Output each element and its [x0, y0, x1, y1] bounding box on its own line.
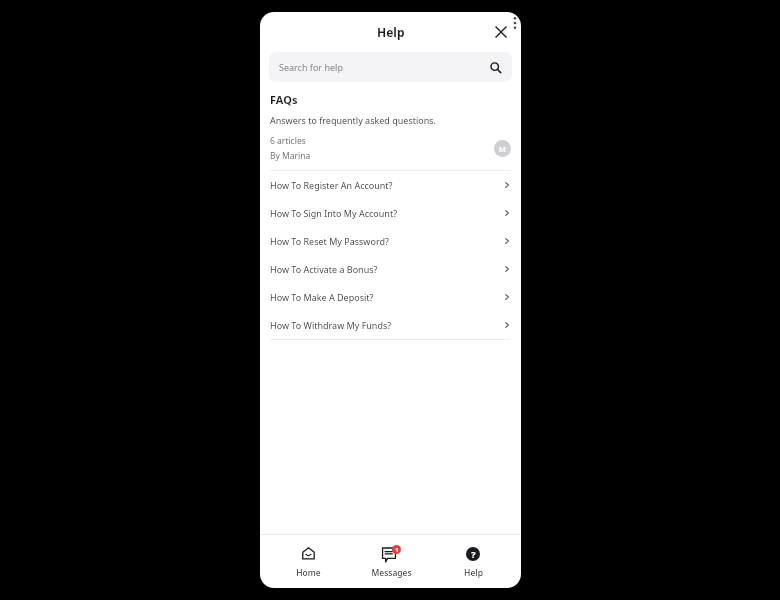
staticText: 1 [395, 546, 399, 554]
staticText: How To Activate a Bonus? [270, 263, 503, 275]
staticText: Help [464, 567, 483, 579]
staticText: M [499, 144, 506, 154]
button[interactable]: Close [490, 21, 512, 43]
staticText: Answers to frequently asked questions. [270, 114, 437, 126]
staticText: How To Make A Deposit? [270, 291, 503, 303]
staticText: Home [296, 567, 321, 579]
button[interactable]: 1 [356, 540, 426, 584]
staticText: How To Withdraw My Funds? [270, 319, 503, 331]
button[interactable]: More options [508, 13, 522, 33]
button[interactable]: How To Activate a Bonus? [260, 255, 521, 283]
button[interactable]: ? [438, 540, 508, 584]
button[interactable]: How To Sign Into My Account? [260, 199, 521, 227]
staticText: Help [377, 24, 405, 40]
staticText: How To Register An Account? [270, 179, 503, 191]
button[interactable]: How To Make A Deposit? [260, 283, 521, 311]
button[interactable]: Home [273, 540, 343, 584]
staticText: FAQs [270, 92, 298, 107]
button[interactable]: How To Withdraw My Funds? [260, 311, 521, 339]
staticText: How To Reset My Password? [270, 235, 503, 247]
staticText: ? [471, 548, 476, 560]
button[interactable]: How To Register An Account? [260, 171, 521, 199]
staticText: By Marina [270, 150, 311, 162]
staticText: How To Sign Into My Account? [270, 207, 503, 219]
staticText: Search for help [279, 61, 343, 73]
staticText: Messages [371, 567, 412, 579]
staticText: 6 articles [270, 135, 306, 147]
button[interactable]: Search for help [269, 52, 512, 82]
button[interactable]: How To Reset My Password? [260, 227, 521, 255]
